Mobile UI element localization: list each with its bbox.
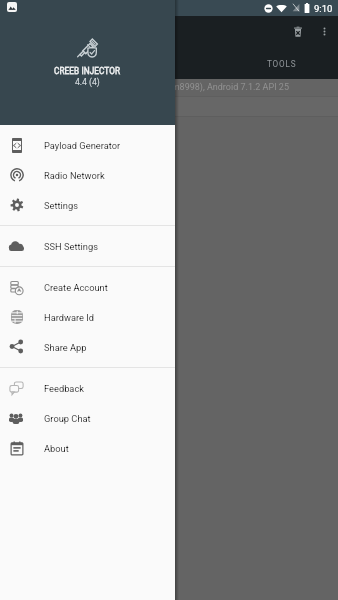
staticText: Device: Xiaomi MI 6 (msm8998), Android 7… (75, 82, 289, 93)
staticText: Feedback (44, 383, 85, 394)
button[interactable]: Feedback (0, 373, 175, 403)
other: Screenshot (7, 2, 17, 12)
staticText: CREEB INJECTOR (54, 66, 121, 76)
button[interactable]: Delete (291, 25, 305, 39)
button[interactable]: Payload Generator (0, 130, 175, 160)
staticText: Radio Network (44, 170, 105, 181)
button[interactable]: Create Account (0, 272, 175, 302)
button[interactable]: Group Chat (0, 403, 175, 433)
button[interactable]: About (0, 433, 175, 463)
staticText: TOOLS (267, 59, 297, 69)
button[interactable]: Settings (0, 190, 175, 220)
staticText: Group Chat (44, 413, 91, 424)
staticText: Share App (44, 342, 87, 353)
staticText: Hardware Id (44, 312, 95, 323)
staticText: 4.4 (4) (75, 77, 100, 87)
button[interactable]: Radio Network (0, 160, 175, 190)
button[interactable]: More options (318, 25, 331, 38)
staticText: Settings (44, 200, 78, 211)
button[interactable]: Share App (0, 332, 175, 362)
button[interactable]: Hardware Id (0, 302, 175, 332)
staticText: Payload Generator (44, 140, 121, 151)
staticText: Create Account (44, 282, 108, 293)
staticText: SSH Settings (44, 241, 98, 252)
button[interactable]: TOOLS (110, 52, 210, 76)
button[interactable]: SSH Settings (0, 231, 175, 261)
staticText: 9:10 (314, 3, 333, 14)
staticText: About (44, 443, 69, 454)
button[interactable]: TOOLS (232, 52, 332, 76)
